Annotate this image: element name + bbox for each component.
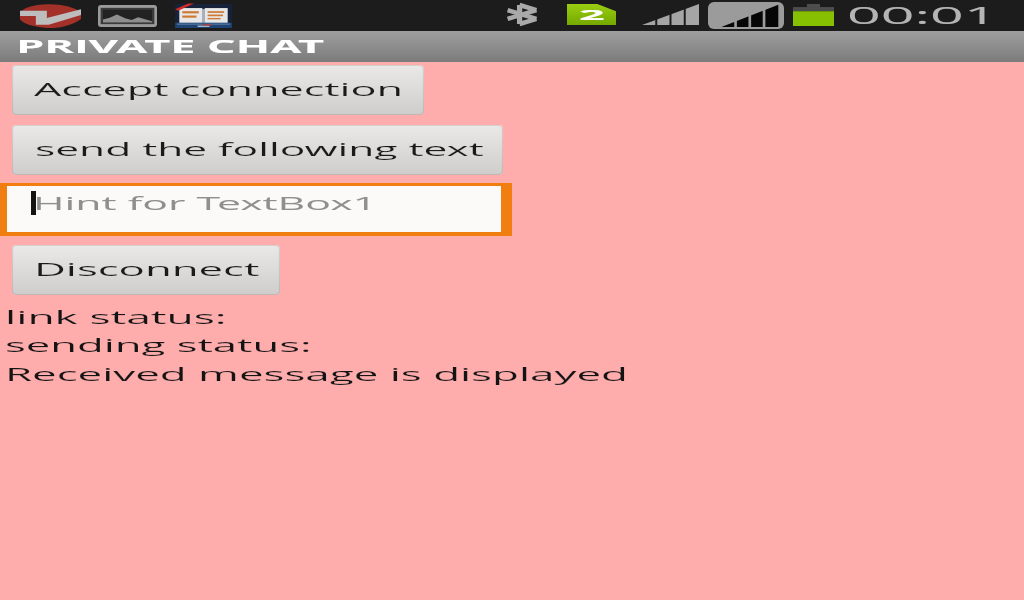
staticText: Hint for TextBox1 xyxy=(33,190,379,216)
other: App notification xyxy=(20,4,81,28)
other: Dictionary notification xyxy=(174,4,233,28)
staticText: sending status: xyxy=(5,332,312,358)
button[interactable]: Accept connection xyxy=(12,65,424,115)
other: SIM 2 xyxy=(567,4,616,25)
staticText: 2 xyxy=(579,4,606,24)
other: Gallery notification xyxy=(98,5,157,27)
other: Mobile signal xyxy=(708,2,784,29)
staticText: Accept connection xyxy=(34,76,405,102)
staticText: send the following text xyxy=(35,136,484,162)
other: Bluetooth xyxy=(507,5,537,24)
other: Battery xyxy=(793,4,834,26)
button[interactable]: Disconnect xyxy=(12,245,280,295)
staticText: Received message is displayed xyxy=(5,361,628,387)
button[interactable]: Hint for TextBox1 xyxy=(7,186,501,232)
button[interactable]: send the following text xyxy=(12,125,503,175)
staticText: 00:01 xyxy=(847,0,1000,30)
other: Signal strength xyxy=(642,4,699,25)
staticText: Disconnect xyxy=(34,256,259,282)
staticText: link status: xyxy=(5,304,229,330)
staticText: PRIVATE CHAT xyxy=(16,34,326,59)
